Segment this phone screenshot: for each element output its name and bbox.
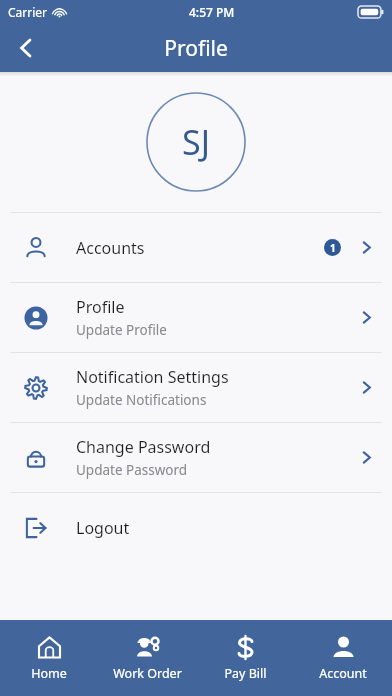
button[interactable]: Back bbox=[4, 26, 48, 70]
button[interactable]: Profile bbox=[0, 283, 392, 352]
staticText: Logout bbox=[76, 517, 130, 539]
staticText: Carrier bbox=[8, 4, 48, 20]
staticText: Change Password bbox=[76, 436, 211, 458]
staticText: 4:57 PM bbox=[189, 4, 235, 20]
button[interactable]: Pay Bill bbox=[196, 620, 294, 696]
button[interactable]: Work Order bbox=[98, 620, 196, 696]
button[interactable]: Account bbox=[294, 620, 392, 696]
staticText: Profile bbox=[76, 296, 125, 318]
staticText: Notification Settings bbox=[76, 366, 229, 388]
staticText: SJ bbox=[182, 119, 210, 165]
staticText: Work Order bbox=[113, 665, 182, 682]
button[interactable]: Home bbox=[0, 620, 98, 696]
staticText: Update Password bbox=[76, 461, 188, 479]
staticText: 1 bbox=[330, 241, 336, 255]
staticText: Account bbox=[319, 665, 367, 682]
staticText: Home bbox=[31, 665, 67, 682]
staticText: Profile bbox=[164, 34, 228, 63]
button[interactable]: Accounts bbox=[0, 213, 392, 282]
staticText: Update Notifications bbox=[76, 391, 207, 409]
staticText: Accounts bbox=[76, 237, 145, 259]
button[interactable]: Logout bbox=[0, 493, 392, 562]
staticText: Pay Bill bbox=[224, 665, 267, 682]
button[interactable]: Change Password bbox=[0, 423, 392, 492]
staticText: Update Profile bbox=[76, 321, 167, 339]
button[interactable]: Notification Settings bbox=[0, 353, 392, 422]
